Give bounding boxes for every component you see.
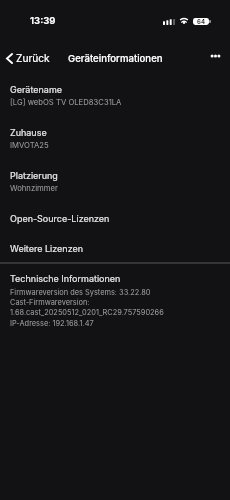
staticText: Zurück <box>16 52 50 64</box>
staticText: Gerätename <box>10 84 63 95</box>
button[interactable]: More options <box>203 46 225 70</box>
staticText: Open-Source-Lizenzen <box>10 213 110 224</box>
staticText: IP-Adresse: 192.168.1.47 <box>10 319 94 328</box>
staticText: Platzierung <box>10 170 58 181</box>
staticText: 64 <box>197 18 205 25</box>
staticText: Weitere Lizenzen <box>10 243 84 254</box>
staticText: Cast-Firmwareversion: <box>10 298 90 307</box>
button[interactable]: Open-Source-Lizenzen <box>0 203 230 233</box>
staticText: Geräteinformationen <box>68 53 163 65</box>
button[interactable]: Weitere Lizenzen <box>0 233 230 263</box>
staticText: Wohnzimmer <box>10 184 58 193</box>
staticText: [LG] webOS TV OLED83C31LA <box>10 98 122 107</box>
staticText: IMVOTA25 <box>10 141 49 150</box>
staticText: Firmwareversion des Systems: 33.22.80 <box>10 288 151 297</box>
staticText: Technische Informationen <box>10 273 121 284</box>
staticText: 1.68.cast_20250512_0201_RC29.757590266 <box>10 308 164 317</box>
button[interactable]: Zurück <box>0 46 64 70</box>
staticText: Zuhause <box>10 127 47 138</box>
staticText: 13:39 <box>30 15 56 27</box>
